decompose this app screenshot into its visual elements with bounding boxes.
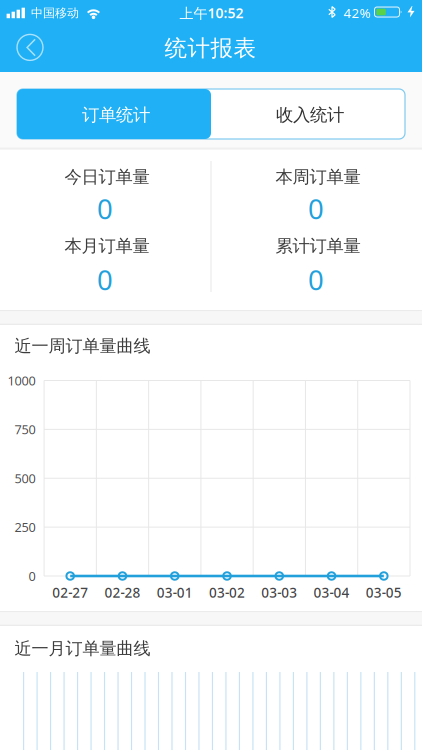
staticText: 累计订单量 (275, 235, 360, 257)
staticText: 订单统计 (82, 104, 150, 126)
staticText: 中国移动 (31, 5, 79, 20)
staticText: 统计报表 (164, 34, 256, 62)
staticText: 03-02 (209, 583, 245, 602)
staticText: 02-28 (104, 583, 140, 602)
staticText: 0 (28, 567, 35, 585)
staticText: 本周订单量 (275, 166, 360, 188)
staticText: 1000 (7, 372, 35, 389)
staticText: 03-03 (261, 583, 297, 602)
staticText: 近一月订单量曲线 (14, 638, 150, 659)
staticText: 03-04 (314, 583, 350, 602)
staticText: 500 (14, 469, 35, 487)
staticText: 今日订单量 (64, 166, 149, 188)
button[interactable]: 订单统计 (17, 89, 211, 139)
staticText: 03-05 (366, 583, 402, 602)
staticText: 本月订单量 (64, 235, 149, 257)
staticText: 42% (343, 4, 370, 22)
staticText: 收入统计 (276, 104, 344, 126)
staticText: 03-01 (157, 583, 193, 602)
staticText: 0 (97, 261, 113, 298)
staticText: 750 (14, 421, 35, 438)
button[interactable]: 收入统计 (211, 89, 405, 139)
staticText: 250 (14, 518, 35, 536)
staticText: 0 (308, 190, 324, 227)
staticText: 近一周订单量曲线 (14, 335, 150, 357)
staticText: 0 (97, 190, 113, 227)
staticText: 02-27 (52, 583, 88, 602)
button[interactable]: Back (10, 27, 50, 67)
staticText: 上午10:52 (179, 3, 243, 22)
staticText: 0 (308, 261, 324, 298)
